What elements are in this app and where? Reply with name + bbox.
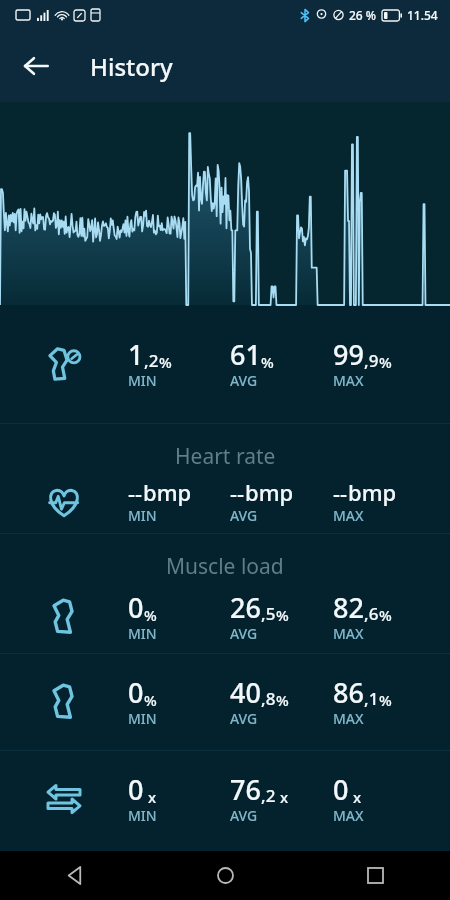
- staticText: ,1: [364, 687, 379, 710]
- button[interactable]: Recent apps: [300, 851, 450, 900]
- staticText: AVG: [230, 371, 258, 390]
- staticText: 1: [128, 336, 144, 373]
- staticText: MIN: [128, 506, 157, 525]
- button[interactable]: Back: [0, 851, 150, 900]
- button[interactable]: 0: [0, 751, 450, 847]
- staticText: MIN: [128, 371, 157, 390]
- staticText: Muscle load: [166, 552, 284, 581]
- button[interactable]: 0: [0, 581, 450, 653]
- staticText: ,2: [144, 349, 159, 372]
- staticText: MAX: [333, 506, 364, 525]
- staticText: 40: [230, 674, 261, 711]
- staticText: MIN: [128, 624, 157, 643]
- staticText: ,5: [261, 602, 276, 625]
- staticText: 82: [333, 589, 364, 626]
- staticText: MAX: [333, 806, 364, 825]
- staticText: MAX: [333, 624, 364, 643]
- staticText: 11.54: [407, 7, 438, 23]
- staticText: bmp: [245, 477, 294, 507]
- staticText: x: [353, 787, 362, 807]
- staticText: 99: [333, 336, 364, 373]
- staticText: %: [261, 352, 274, 372]
- staticText: x: [148, 787, 157, 807]
- staticText: AVG: [230, 506, 258, 525]
- button[interactable]: --: [0, 471, 450, 533]
- staticText: AVG: [230, 709, 258, 728]
- staticText: AVG: [230, 806, 258, 825]
- staticText: %: [276, 690, 289, 710]
- staticText: ,2: [261, 784, 276, 807]
- staticText: %: [159, 352, 172, 372]
- staticText: MAX: [333, 709, 364, 728]
- staticText: --: [333, 478, 348, 508]
- staticText: 0: [128, 674, 144, 711]
- staticText: 61: [230, 336, 261, 373]
- staticText: %: [144, 690, 157, 710]
- staticText: 86: [333, 674, 364, 711]
- staticText: %: [379, 605, 392, 625]
- staticText: bmp: [143, 477, 192, 507]
- staticText: ,9: [364, 349, 379, 372]
- staticText: ,6: [364, 602, 379, 625]
- staticText: ,8: [261, 687, 276, 710]
- staticText: 76: [230, 771, 261, 808]
- staticText: Heart rate: [175, 442, 276, 471]
- staticText: MAX: [333, 371, 364, 390]
- staticText: --: [128, 478, 143, 508]
- staticText: MIN: [128, 709, 157, 728]
- staticText: %: [144, 605, 157, 625]
- staticText: History: [90, 50, 173, 83]
- staticText: %: [276, 605, 289, 625]
- staticText: 0: [128, 771, 144, 808]
- button[interactable]: 0: [0, 654, 450, 750]
- staticText: MIN: [128, 806, 157, 825]
- button[interactable]: Back: [10, 40, 62, 92]
- staticText: --: [230, 478, 245, 508]
- button[interactable]: Home: [150, 851, 300, 900]
- staticText: 26: [230, 589, 261, 626]
- staticText: AVG: [230, 624, 258, 643]
- staticText: 0: [333, 771, 349, 808]
- staticText: %: [379, 352, 392, 372]
- staticText: %: [379, 690, 392, 710]
- staticText: x: [280, 787, 289, 807]
- staticText: 26 %: [349, 7, 377, 23]
- button[interactable]: 1: [0, 305, 450, 423]
- staticText: 0: [128, 589, 144, 626]
- staticText: bmp: [348, 477, 397, 507]
